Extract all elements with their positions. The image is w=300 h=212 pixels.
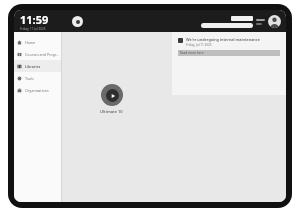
staticText: Organisations xyxy=(25,88,49,93)
staticText: Tools xyxy=(25,76,34,81)
button[interactable]: Read more here xyxy=(178,50,280,56)
button[interactable]: Courses and Programs xyxy=(14,48,61,60)
button[interactable]: Organisations xyxy=(14,84,61,96)
button[interactable]: Libraries xyxy=(14,60,61,72)
staticText: Home xyxy=(25,40,36,45)
staticText: Friday, Jul 11 2025 xyxy=(186,43,212,47)
button[interactable]: We're undergoing internal maintenance xyxy=(178,37,280,47)
button[interactable]: Search xyxy=(231,16,253,21)
staticText: Friday, 11 Jul 2025 xyxy=(20,27,46,31)
staticText: Libraries xyxy=(25,64,41,69)
staticText: Courses and Programs xyxy=(25,52,61,57)
button[interactable]: Play video xyxy=(100,84,123,114)
button[interactable]: 11:59 xyxy=(20,12,49,31)
button[interactable]: Profile xyxy=(268,15,281,28)
button[interactable]: Home xyxy=(14,36,61,48)
button[interactable]: App icon xyxy=(72,16,83,27)
button[interactable]: Address bar xyxy=(201,23,253,28)
staticText: Ultimate 10 xyxy=(100,109,123,114)
staticText: We're undergoing internal maintenance xyxy=(186,37,260,42)
staticText: 11:59 xyxy=(20,12,49,27)
staticText: Read more here xyxy=(178,51,204,55)
button[interactable]: Tools xyxy=(14,72,61,84)
